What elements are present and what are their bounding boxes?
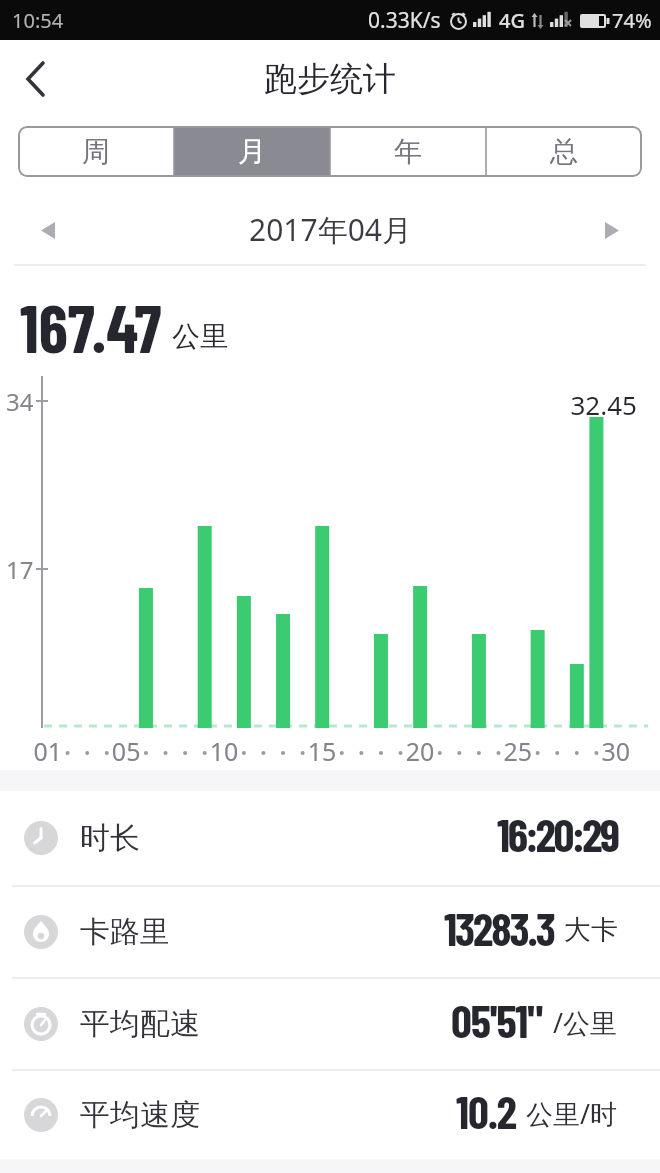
staticText: 年 (394, 134, 422, 169)
button[interactable]: 年 (330, 126, 486, 177)
staticText: 跑步统计 (264, 58, 396, 100)
button[interactable] (592, 210, 632, 250)
staticText: 时长 (80, 819, 140, 857)
staticText: 4G (499, 7, 525, 34)
staticText: 16:20:29 (497, 806, 618, 861)
staticText: 10:54 (12, 7, 64, 34)
button[interactable]: 时长 (0, 791, 660, 885)
button[interactable] (28, 210, 68, 250)
staticText: 卡路里 (80, 913, 170, 951)
staticText: 05'51" (451, 992, 543, 1047)
button[interactable]: 平均速度 (0, 1071, 660, 1159)
staticText: 月 (238, 134, 266, 169)
staticText: 74% (612, 7, 652, 34)
staticText: 公里 (172, 319, 228, 354)
staticText: 0.33K/s (368, 6, 441, 35)
staticText: 2017年04月 (249, 209, 412, 250)
staticText: 167.47 (20, 287, 162, 366)
staticText: 大卡 (564, 913, 618, 947)
staticText: 平均配速 (80, 1005, 200, 1043)
button[interactable]: 卡路里 (0, 887, 660, 977)
staticText: 13283.3 (444, 900, 554, 955)
button[interactable]: 周 (18, 126, 174, 177)
button[interactable]: 月 (174, 126, 330, 177)
staticText: 平均速度 (80, 1096, 200, 1134)
button[interactable]: 平均配速 (0, 979, 660, 1069)
staticText: 周 (82, 134, 110, 169)
button[interactable] (14, 57, 58, 101)
staticText: /公里 (553, 1004, 618, 1041)
staticText: 总 (550, 134, 578, 169)
staticText: 10.2 (456, 1083, 516, 1138)
staticText: 公里/时 (526, 1095, 618, 1132)
button[interactable]: 总 (486, 126, 642, 177)
